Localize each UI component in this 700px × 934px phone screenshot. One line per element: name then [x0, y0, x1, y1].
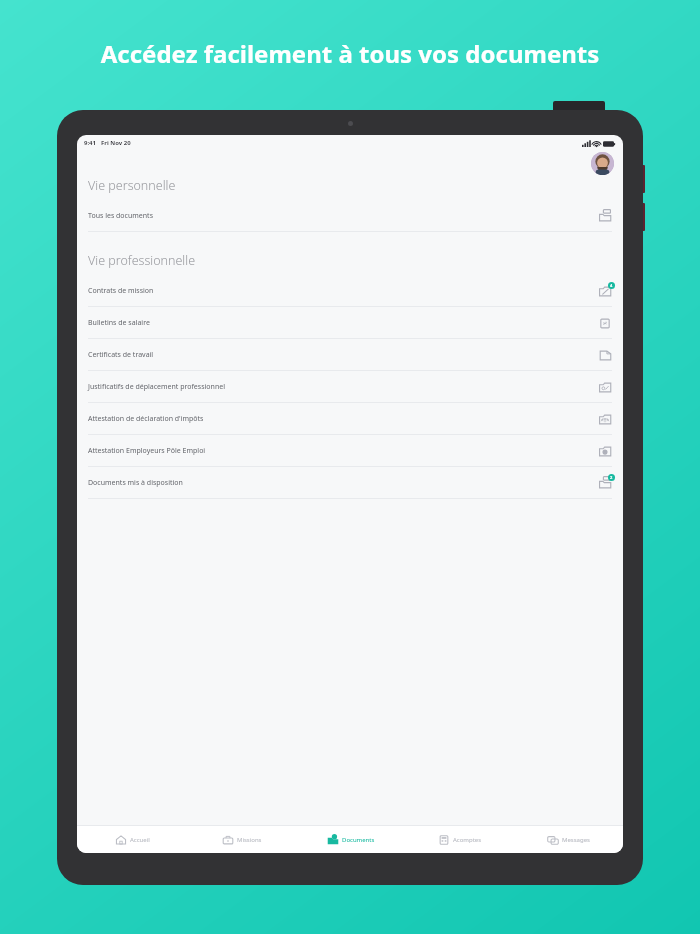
staticText: Attestation de déclaration d'impôts — [88, 414, 204, 424]
staticText: Vie personnelle — [88, 177, 176, 194]
button[interactable]: Attestation de déclaration d'impôts — [77, 403, 623, 435]
staticText: Contrats de mission — [88, 286, 154, 296]
staticText: Tous les documents — [88, 211, 153, 221]
button[interactable]: Tous les documents — [77, 200, 623, 232]
button[interactable]: Justificatifs de déplacement professionn… — [77, 371, 623, 403]
staticText: 9:41 — [84, 139, 96, 147]
button[interactable]: Contrats de mission — [77, 275, 623, 307]
staticText: 4 — [610, 283, 613, 288]
button[interactable]: Attestation Employeurs Pôle Emploi — [77, 435, 623, 467]
button[interactable]: Missions — [187, 826, 296, 853]
staticText: Messages — [562, 836, 590, 844]
staticText: Accédez facilement à tous vos documents — [0, 37, 700, 70]
button[interactable]: Profile — [591, 152, 614, 175]
button[interactable]: Accueil — [77, 826, 187, 853]
button[interactable]: Acomptes — [405, 826, 514, 853]
staticText: Certificats de travail — [88, 350, 154, 360]
staticText: Bulletins de salaire — [88, 318, 150, 328]
staticText: Accueil — [130, 836, 150, 844]
button[interactable]: Bulletins de salaire — [77, 307, 623, 339]
staticText: Fri Nov 20 — [101, 139, 131, 147]
staticText: Acomptes — [453, 836, 482, 844]
button[interactable]: Certificats de travail — [77, 339, 623, 371]
staticText: 2 — [610, 475, 613, 480]
staticText: Justificatifs de déplacement professionn… — [88, 382, 225, 392]
button[interactable]: Messages — [514, 826, 623, 853]
button[interactable]: Documents — [296, 826, 405, 853]
staticText: Documents — [342, 836, 375, 844]
staticText: Documents mis à disposition — [88, 478, 183, 488]
staticText: Vie professionnelle — [88, 252, 196, 269]
button[interactable]: Documents mis à disposition — [77, 467, 623, 499]
staticText: Attestation Employeurs Pôle Emploi — [88, 446, 206, 456]
staticText: Missions — [237, 836, 262, 844]
